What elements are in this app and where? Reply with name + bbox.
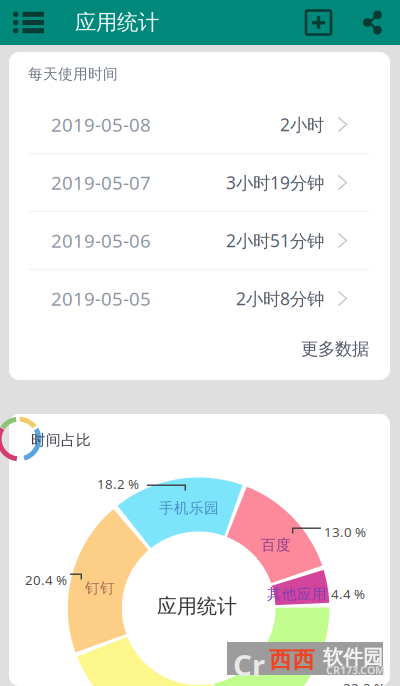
staticText: 2019-05-06 [51, 228, 151, 253]
staticText: 应用统计 [75, 9, 159, 36]
staticText: 钉钉 [85, 579, 115, 597]
button[interactable]: 2019-05-05 [9, 270, 390, 327]
staticText: Cr [233, 645, 265, 684]
button[interactable]: 更多数据 [9, 327, 390, 371]
staticText: 20.4 % [25, 571, 67, 589]
staticText: 更多数据 [301, 338, 369, 360]
staticText: 18.2 % [97, 475, 139, 493]
staticText: 22.2 % [343, 679, 385, 686]
staticText: 百度 [261, 536, 291, 554]
staticText: 2小时 [280, 113, 324, 136]
button[interactable]: 2019-05-07 [9, 154, 390, 211]
button[interactable]: Menu [0, 0, 54, 45]
staticText: 应用统计 [157, 594, 237, 619]
staticText: 13.0 % [324, 523, 366, 541]
staticText: 每天使用时间 [28, 65, 118, 83]
staticText: 时间占比 [31, 431, 91, 449]
staticText: 2019-05-07 [51, 170, 151, 195]
staticText: 2小时51分钟 [226, 229, 324, 252]
button[interactable]: 2019-05-06 [9, 212, 390, 269]
staticText: 西西 [269, 646, 315, 674]
staticText: 手机乐园 [159, 499, 219, 517]
staticText: 2019-05-05 [51, 286, 151, 311]
button[interactable]: Share [363, 0, 382, 45]
staticText: 2019-05-08 [51, 112, 151, 137]
button[interactable]: 2019-05-08 [9, 96, 390, 153]
staticText: 2小时8分钟 [236, 287, 324, 310]
staticText: 其他应用 [267, 585, 327, 603]
button[interactable]: Add [305, 0, 332, 45]
staticText: CR173.COM [326, 663, 385, 677]
staticText: 4.4 % [331, 585, 365, 603]
staticText: 软件园 [323, 645, 383, 670]
staticText: 3小时19分钟 [226, 171, 324, 194]
